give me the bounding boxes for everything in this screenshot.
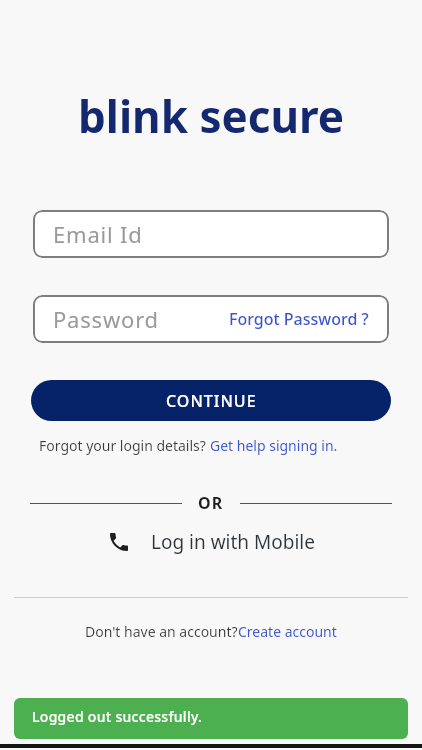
staticText: Password: [53, 304, 159, 334]
button[interactable]: Log in with Mobile: [107, 529, 315, 555]
staticText: OR: [198, 492, 224, 514]
staticText: Forgot your login details?: [39, 436, 210, 455]
button[interactable]: CONTINUE: [31, 380, 391, 421]
staticText: Log in with Mobile: [151, 529, 315, 555]
button[interactable]: Email Id: [33, 210, 389, 258]
button[interactable]: Forgot your login details?: [39, 436, 338, 455]
staticText: blink secure: [78, 86, 345, 146]
staticText: Don't have an account?: [85, 622, 238, 641]
button[interactable]: Forgot Password ?: [229, 308, 369, 330]
staticText: Email Id: [53, 219, 143, 249]
staticText: CONTINUE: [166, 390, 257, 412]
staticText: Logged out successfully.: [32, 707, 203, 726]
button[interactable]: Don't have an account?: [85, 622, 337, 641]
staticText: Get help signing in.: [210, 436, 338, 455]
button[interactable]: Password: [33, 295, 389, 343]
staticText: Create account: [238, 622, 337, 641]
staticText: Forgot Password ?: [229, 308, 369, 330]
